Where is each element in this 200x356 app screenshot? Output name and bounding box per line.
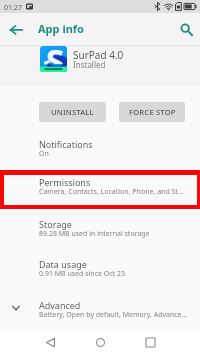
staticText: Advanced [39, 299, 81, 311]
staticText: 0.91 MB used since Oct 23 [39, 269, 194, 279]
button[interactable]: Storage [0, 213, 200, 241]
staticText: On [39, 149, 194, 159]
button[interactable]: Back [3, 16, 30, 43]
staticText: Storage [39, 218, 72, 230]
staticText: Camera, Contacts, Location, Phone, and S… [39, 187, 187, 197]
button[interactable]: Permissions [0, 169, 200, 209]
staticText: Data usage [39, 258, 87, 270]
button[interactable]: Search [173, 16, 200, 43]
staticText: Permissions [39, 176, 91, 188]
button[interactable]: UNINSTALL [39, 102, 106, 122]
staticText: SurPad 4.0 [73, 48, 124, 62]
staticText: S [46, 46, 65, 64]
button[interactable]: Back [37, 330, 63, 355]
staticText: 89.28 MB used in internal storage [39, 229, 194, 239]
button[interactable]: FORCE STOP [119, 102, 185, 122]
button[interactable]: Home [87, 330, 113, 355]
staticText: Battery, Open by default, Memory, Advanc… [39, 310, 189, 320]
staticText: 01:27 [4, 3, 22, 13]
button[interactable]: Data usage [0, 253, 200, 281]
staticText: UNINSTALL [51, 107, 94, 117]
staticText: Installed [73, 59, 106, 70]
staticText: FORCE STOP [129, 107, 176, 117]
button[interactable]: Recents [137, 330, 163, 355]
button[interactable]: Advanced [0, 294, 200, 322]
button[interactable]: Notifications [0, 133, 200, 161]
staticText: App info [38, 21, 84, 36]
staticText: Notifications [39, 138, 93, 150]
